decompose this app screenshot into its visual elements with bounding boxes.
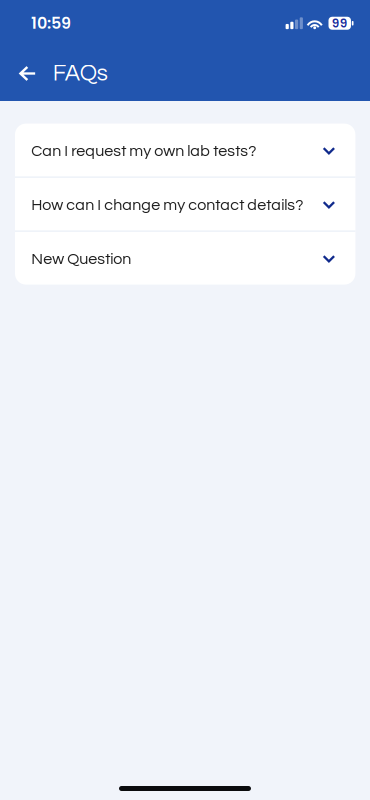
button[interactable]: Can I request my own lab tests? (15, 124, 355, 177)
button[interactable]: New Question (15, 232, 355, 285)
staticText: 99 (332, 15, 348, 32)
staticText: New Question (31, 251, 131, 267)
staticText: 10:59 (31, 12, 71, 34)
button[interactable]: How can I change my contact details? (15, 178, 355, 231)
staticText: FAQs (53, 62, 108, 85)
staticText: Can I request my own lab tests? (31, 143, 256, 159)
staticText: How can I change my contact details? (31, 197, 303, 213)
button[interactable]: Back (11, 56, 45, 90)
